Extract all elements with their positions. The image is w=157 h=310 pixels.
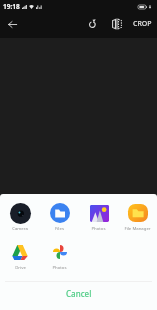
button[interactable]: Photos: [40, 241, 79, 270]
staticText: Photos: [52, 264, 67, 270]
staticText: 19:18: [3, 2, 20, 11]
button[interactable]: Files: [40, 202, 79, 231]
button[interactable]: Cancel: [0, 281, 157, 310]
button[interactable]: Camera: [0, 202, 40, 231]
staticText: Photos: [91, 225, 106, 231]
staticText: Drive: [15, 264, 26, 270]
staticText: Camera: [12, 225, 28, 231]
button[interactable]: Rotate: [84, 15, 102, 33]
button[interactable]: Back: [3, 15, 21, 33]
button[interactable]: Drive: [0, 241, 40, 270]
button[interactable]: CROP: [128, 14, 157, 34]
staticText: File Manager: [124, 225, 151, 231]
button[interactable]: File Manager: [118, 202, 157, 231]
staticText: Cancel: [66, 288, 92, 299]
button[interactable]: Flip: [108, 15, 126, 33]
staticText: CROP: [133, 19, 152, 29]
button[interactable]: Photos: [79, 202, 118, 231]
staticText: Files: [55, 225, 64, 231]
